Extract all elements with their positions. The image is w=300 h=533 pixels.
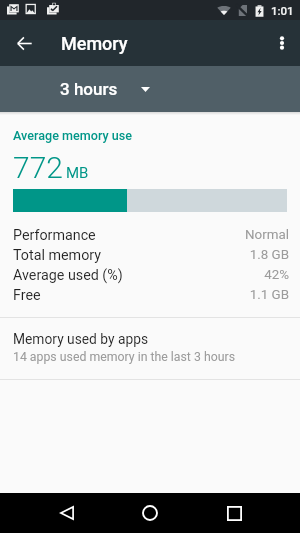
staticText: Memory used by apps [13,331,149,347]
staticText: Average memory use [13,128,133,143]
button[interactable]: Back [47,493,87,533]
staticText: 1:01 [271,4,294,17]
staticText: Total memory [13,247,102,264]
staticText: 772 [13,150,63,185]
button[interactable]: Memory used by apps [0,318,300,379]
staticText: Free [13,287,41,304]
staticText: 42% [264,267,289,283]
button[interactable]: Home [130,493,170,533]
staticText: MB [66,164,89,182]
button[interactable]: More options [264,25,300,61]
button[interactable]: Navigate up [6,25,42,61]
staticText: Average used (%) [13,267,123,284]
staticText: Memory [61,33,128,54]
button[interactable]: Recent apps [214,493,254,533]
staticText: Performance [13,227,96,244]
button[interactable]: 3 hours [52,73,158,105]
staticText: Normal [244,227,289,243]
staticText: 1.1 GB [249,287,289,303]
staticText: 14 apps used memory in the last 3 hours [13,350,235,364]
staticText: 1.8 GB [249,247,289,263]
staticText: 3 hours [60,79,118,99]
